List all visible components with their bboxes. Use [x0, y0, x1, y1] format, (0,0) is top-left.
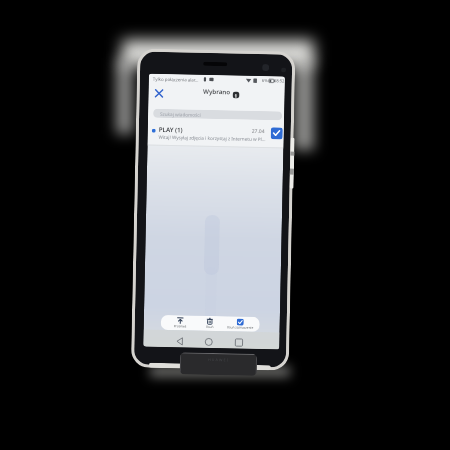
staticText: PLAY (1)	[159, 125, 183, 133]
staticText: HUAWEI	[208, 357, 230, 362]
button[interactable]: Przenieś	[169, 315, 191, 331]
staticText: Usuń	[206, 325, 214, 329]
staticText: 27.04	[252, 128, 265, 135]
staticText: Wybrano	[202, 87, 231, 95]
button[interactable]	[169, 330, 196, 348]
button[interactable]	[227, 331, 252, 349]
staticText: Przenieś	[174, 324, 187, 328]
staticText: 6%	[262, 78, 268, 84]
button[interactable]	[152, 87, 166, 100]
staticText: Witaj! Wysyłaj zdjęcia i korzystaj z Int…	[159, 134, 266, 142]
staticText: 1	[234, 92, 238, 98]
staticText: 08:52	[274, 78, 285, 84]
button[interactable]	[153, 109, 282, 120]
button[interactable]: Usuń	[199, 316, 220, 331]
staticText: Tylko połączenia alar...	[153, 76, 199, 83]
button[interactable]	[197, 331, 222, 348]
button[interactable]: PLAY (1)	[147, 122, 284, 147]
staticText: Usuń zaznaczenie	[227, 325, 254, 330]
button[interactable]: Usuń zaznaczenie	[223, 316, 257, 332]
staticText: Szukaj wiadomości	[160, 111, 201, 118]
